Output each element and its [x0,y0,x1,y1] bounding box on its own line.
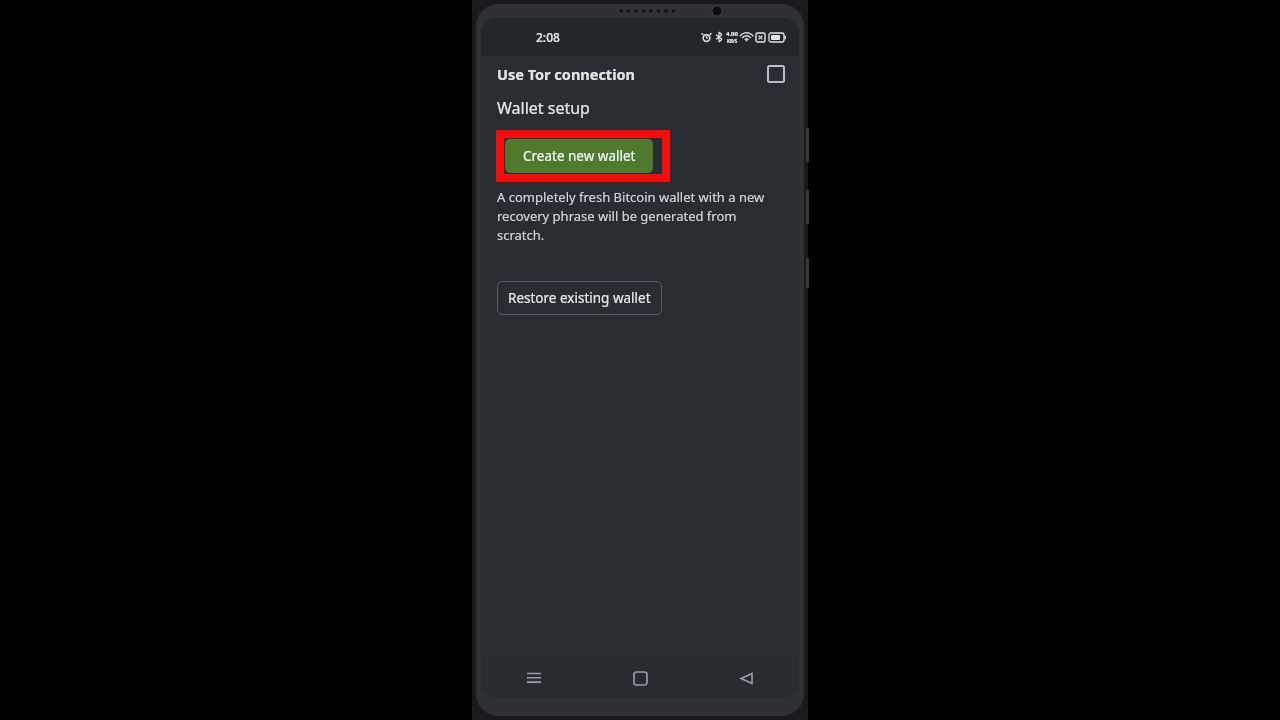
button[interactable]: Restore existing wallet [497,281,662,315]
staticText: KB/S [727,38,738,44]
staticText: Create new wallet [523,147,636,165]
staticText: Wallet setup [497,97,590,119]
button[interactable]: Home [587,658,693,698]
staticText: Use Tor connection [497,64,767,84]
button[interactable]: Back [693,658,799,698]
staticText: 4.00 [726,30,738,38]
button[interactable]: Recents [481,658,587,698]
button[interactable]: Use Tor connection [481,55,799,92]
button[interactable]: Create new wallet [505,139,653,173]
staticText: 2:08 [536,29,560,45]
staticText: Restore existing wallet [508,289,651,307]
other: Use Tor connection checkbox [767,65,785,83]
staticText: A completely fresh Bitcoin wallet with a… [497,188,769,244]
